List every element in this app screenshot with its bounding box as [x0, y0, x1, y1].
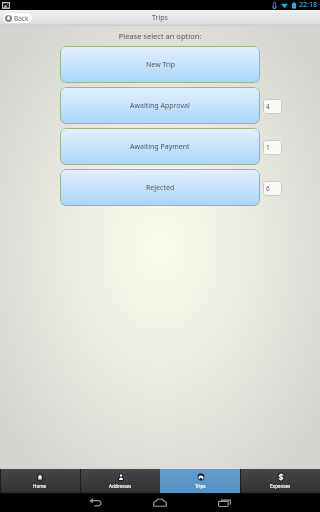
- button[interactable]: Awaiting Payment: [60, 128, 260, 165]
- button[interactable]: Addresses: [80, 469, 160, 493]
- staticText: Expenses: [270, 483, 291, 489]
- button[interactable]: Home: [140, 493, 180, 512]
- staticText: 6: [266, 184, 270, 193]
- button[interactable]: Home: [0, 469, 80, 493]
- button[interactable]: Trips: [160, 469, 240, 493]
- staticText: Awaiting Approval: [130, 101, 190, 111]
- staticText: Home: [33, 483, 47, 489]
- button[interactable]: Expenses: [240, 469, 320, 493]
- staticText: 22:18: [299, 0, 317, 10]
- staticText: Addresses: [109, 483, 132, 489]
- staticText: 4: [266, 102, 270, 111]
- staticText: Awaiting Payment: [130, 142, 190, 152]
- button[interactable]: Awaiting Approval: [60, 87, 260, 124]
- button[interactable]: 1: [263, 140, 282, 155]
- staticText: Trips: [152, 13, 168, 23]
- staticText: Back: [14, 14, 29, 23]
- staticText: New Trip: [146, 60, 175, 70]
- button[interactable]: Back: [3, 13, 32, 23]
- button[interactable]: Recent apps: [205, 493, 245, 512]
- button[interactable]: 4: [263, 99, 282, 114]
- button[interactable]: New Trip: [60, 46, 260, 83]
- staticText: Trips: [195, 483, 206, 489]
- staticText: Please select an option:: [0, 31, 320, 41]
- button[interactable]: Back: [75, 493, 115, 512]
- staticText: 1: [266, 143, 270, 152]
- button[interactable]: Rejected: [60, 169, 260, 206]
- staticText: Rejected: [146, 183, 175, 193]
- button[interactable]: 6: [263, 181, 282, 196]
